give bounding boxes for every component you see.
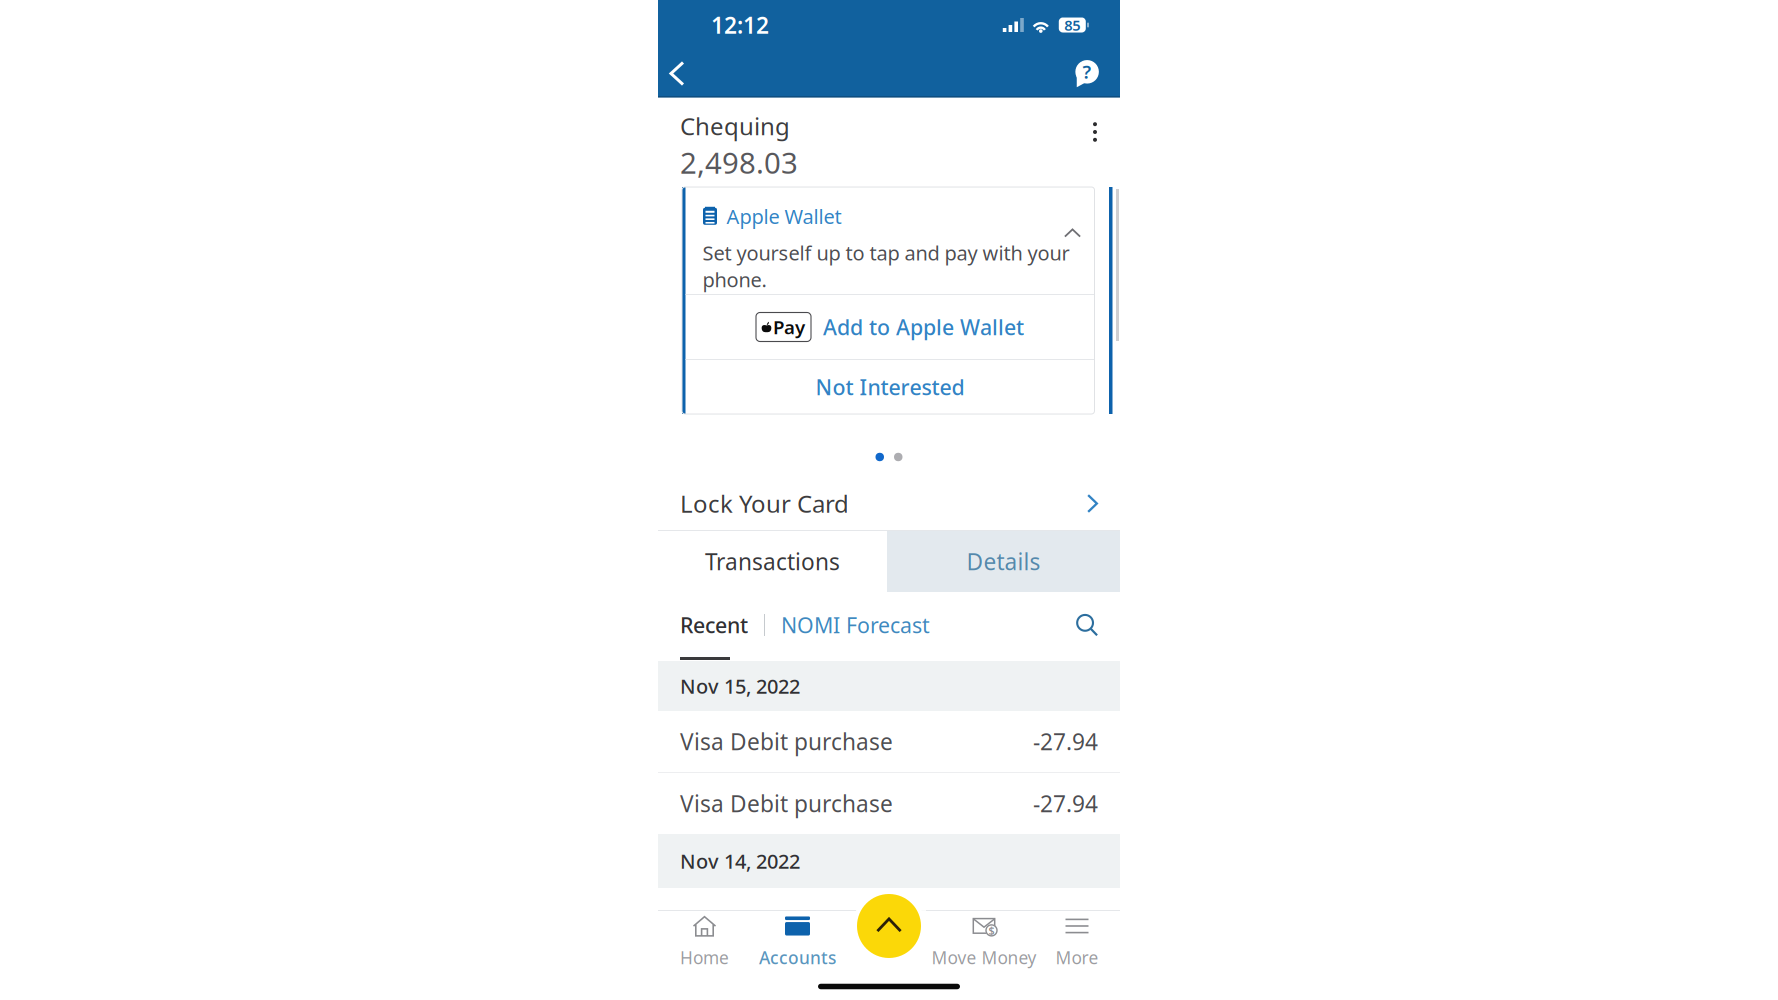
staticText: Details bbox=[966, 546, 1040, 576]
staticText: Transactions bbox=[705, 546, 840, 576]
button[interactable]: Visa Debit purchase bbox=[658, 773, 1120, 834]
staticText: 12:12 bbox=[711, 10, 769, 40]
staticText: ? bbox=[1083, 59, 1092, 84]
staticText: -27.94 bbox=[1033, 726, 1098, 756]
staticText: -27.94 bbox=[1033, 788, 1098, 818]
button[interactable]: Collapse bbox=[1056, 217, 1088, 249]
staticText: Nov 15, 2022 bbox=[680, 673, 800, 699]
staticText: Visa Debit purchase bbox=[680, 726, 893, 756]
staticText: More bbox=[1055, 946, 1098, 969]
button[interactable]: Help bbox=[1063, 51, 1109, 96]
staticText: Add to Apple Wallet bbox=[823, 313, 1024, 341]
staticText: Visa Debit purchase bbox=[680, 788, 893, 818]
staticText: Not Interested bbox=[815, 373, 964, 401]
button[interactable]: More bbox=[1034, 911, 1120, 973]
staticText: Chequing bbox=[680, 110, 790, 142]
staticText: 2,498.03 bbox=[680, 143, 798, 182]
staticText: $ bbox=[988, 923, 994, 937]
button[interactable]: Home bbox=[658, 911, 751, 973]
staticText: Apple Wallet bbox=[726, 203, 841, 230]
staticText: 85 bbox=[1064, 15, 1080, 35]
button[interactable]: Transactions bbox=[658, 531, 887, 592]
button[interactable]: Lock Your Card bbox=[658, 474, 1120, 533]
staticText: NOMI Forecast bbox=[781, 611, 930, 639]
button[interactable]: Account options bbox=[1074, 112, 1116, 152]
button[interactable]: Not Interested bbox=[685, 360, 1094, 414]
staticText: Set yourself up to tap and pay with your… bbox=[702, 240, 1069, 293]
staticText: Accounts bbox=[759, 946, 836, 969]
button[interactable]: Details bbox=[887, 531, 1120, 592]
button[interactable]: Quick actions bbox=[853, 890, 925, 962]
staticText: Move Money bbox=[931, 946, 1036, 969]
staticText: Recent bbox=[680, 611, 748, 639]
staticText: Nov 14, 2022 bbox=[680, 848, 800, 874]
button[interactable]: Pay bbox=[685, 295, 1094, 359]
staticText: Home bbox=[680, 946, 729, 969]
button[interactable]: Back bbox=[654, 51, 700, 96]
staticText: Lock Your Card bbox=[680, 488, 849, 519]
button[interactable]: Accounts bbox=[751, 911, 844, 973]
button[interactable]: Search bbox=[1068, 605, 1106, 645]
button[interactable]: Recent bbox=[680, 605, 748, 645]
button[interactable]: $ bbox=[934, 911, 1034, 973]
staticText: Pay bbox=[773, 315, 805, 339]
button[interactable]: Visa Debit purchase bbox=[658, 711, 1120, 772]
button[interactable]: NOMI Forecast bbox=[781, 605, 930, 645]
